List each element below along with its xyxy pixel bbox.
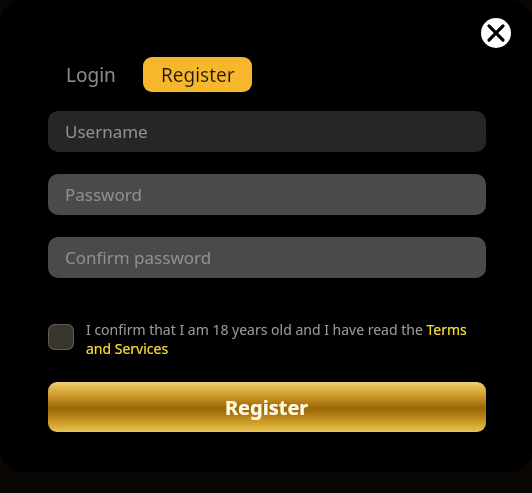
button[interactable]: Username xyxy=(48,111,486,152)
button[interactable]: I confirm that I am 18 years old and I h… xyxy=(48,320,486,358)
staticText: Register xyxy=(225,394,309,421)
button[interactable]: Password xyxy=(48,174,486,215)
staticText: Register xyxy=(161,62,235,88)
button[interactable]: Close xyxy=(481,18,511,48)
staticText: Username xyxy=(65,120,148,143)
staticText: Password xyxy=(65,183,142,206)
button[interactable]: Login xyxy=(48,57,134,92)
staticText: Login xyxy=(66,62,116,88)
button[interactable]: Register xyxy=(143,57,252,92)
button[interactable]: Confirm password xyxy=(48,237,486,278)
staticText: I confirm that I am 18 years old and I h… xyxy=(86,320,486,358)
button[interactable]: Register xyxy=(48,382,486,432)
staticText: Confirm password xyxy=(65,246,212,269)
